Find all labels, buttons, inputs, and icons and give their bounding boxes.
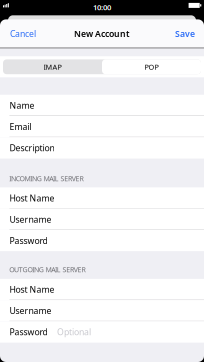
staticText: Host Name: [9, 192, 54, 204]
staticText: Cancel: [10, 28, 36, 39]
button[interactable]: Username: [0, 209, 204, 230]
staticText: Save: [175, 28, 195, 39]
button[interactable]: IMAP: [3, 59, 102, 74]
button[interactable]: Cancel: [0, 19, 45, 47]
button[interactable]: Save: [166, 19, 204, 47]
staticText: Username: [9, 305, 51, 317]
button[interactable]: POP: [102, 59, 201, 74]
staticText: Username: [9, 213, 51, 225]
staticText: INCOMING MAIL SERVER: [9, 174, 83, 183]
staticText: POP: [144, 62, 158, 72]
button[interactable]: Description: [0, 137, 204, 158]
staticText: Password: [9, 326, 47, 338]
button[interactable]: Name: [0, 95, 204, 116]
button[interactable]: Password: [0, 321, 204, 343]
button[interactable]: Host Name: [0, 187, 204, 209]
staticText: OUTGOING MAIL SERVER: [9, 265, 85, 274]
button[interactable]: Email: [0, 116, 204, 137]
staticText: Optional: [57, 326, 91, 338]
staticText: Name: [9, 99, 34, 111]
button[interactable]: Host Name: [0, 279, 204, 300]
button[interactable]: Password: [0, 230, 204, 251]
staticText: Description: [9, 142, 54, 154]
staticText: Host Name: [9, 284, 54, 295]
button[interactable]: Username: [0, 300, 204, 321]
staticText: New Account: [74, 28, 130, 39]
staticText: Email: [9, 121, 31, 132]
staticText: IMAP: [43, 62, 61, 72]
staticText: Password: [9, 235, 47, 246]
staticText: 10:00: [93, 2, 111, 12]
